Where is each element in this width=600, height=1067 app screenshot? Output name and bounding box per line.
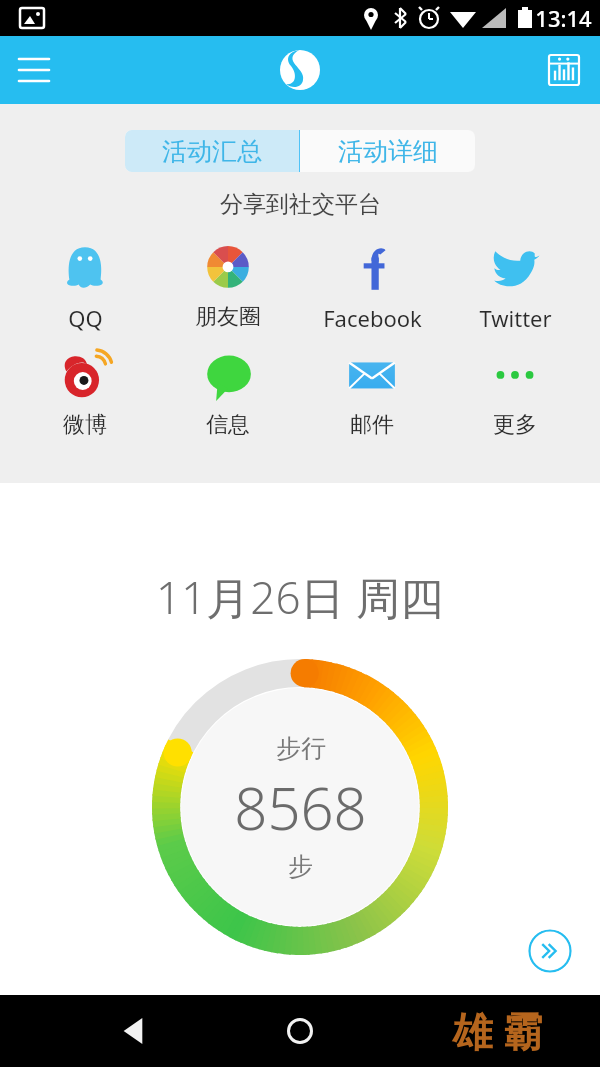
staticText: 邮件 — [350, 411, 394, 439]
button[interactable]: Facebook — [313, 241, 431, 335]
button[interactable]: 更多 — [456, 349, 574, 441]
button[interactable]: 活动详细 — [300, 130, 475, 172]
button[interactable]: 朋友圈 — [169, 241, 287, 333]
staticText: 活动详细 — [338, 136, 438, 167]
button[interactable]: Back — [110, 1007, 158, 1055]
staticText: QQ — [68, 303, 103, 333]
staticText: 活动汇总 — [162, 136, 262, 167]
staticText: 更多 — [493, 411, 537, 439]
button[interactable]: 微博 — [26, 349, 144, 441]
button[interactable]: 信息 — [169, 349, 287, 441]
staticText: 步 — [288, 851, 313, 882]
staticText: 步行 — [276, 733, 326, 764]
button[interactable]: Home — [276, 1007, 324, 1055]
button[interactable]: Menu — [8, 44, 60, 96]
button[interactable]: 邮件 — [313, 349, 431, 441]
button[interactable]: 活动汇总 — [125, 130, 299, 172]
staticText: 雄 霸 — [452, 1003, 543, 1058]
button[interactable]: Recents — [422, 1003, 572, 1059]
staticText: 8568 — [234, 768, 367, 847]
button[interactable]: More details — [528, 929, 572, 973]
button[interactable]: Twitter — [456, 241, 574, 335]
staticText: 信息 — [206, 411, 250, 439]
staticText: 13:14 — [535, 3, 592, 33]
staticText: 11月26日 周四 — [156, 567, 444, 627]
staticText: 分享到社交平台 — [220, 190, 381, 219]
button[interactable]: Statistics — [538, 44, 590, 96]
staticText: Twitter — [479, 303, 552, 333]
staticText: Facebook — [323, 303, 422, 333]
button[interactable]: QQ — [26, 241, 144, 335]
staticText: 微博 — [63, 411, 107, 439]
staticText: 朋友圈 — [195, 303, 261, 331]
